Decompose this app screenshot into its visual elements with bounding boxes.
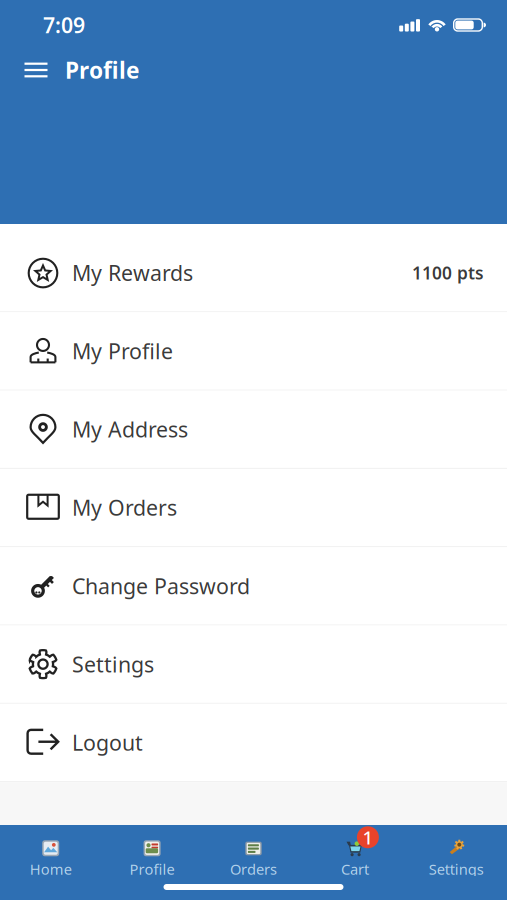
button[interactable]: My Rewards [0,234,507,312]
staticText: version 1.17.2 [191,829,315,853]
staticText: My Address [72,415,188,443]
staticText: My Profile [72,337,173,365]
button[interactable]: Menu [24,58,48,82]
button[interactable]: Home [0,842,101,876]
staticText: Home [30,859,72,879]
staticText: Orders [230,859,277,879]
staticText: Change Password [72,572,250,600]
staticText: Cart [341,859,369,879]
staticText: My Orders [72,493,177,522]
button[interactable]: Settings [406,842,507,876]
button[interactable]: Profile [101,842,203,876]
staticText: Settings [72,650,154,678]
button[interactable]: My Address [0,391,507,469]
staticText: 1 [362,825,373,850]
staticText: My Rewards [72,258,193,287]
button[interactable]: 1 [304,842,406,876]
staticText: 7:09 [43,11,85,39]
button[interactable]: Orders [203,842,304,876]
button[interactable]: Change Password [0,547,507,625]
staticText: Profile [130,859,175,879]
staticText: Settings [429,859,484,879]
button[interactable]: Settings [0,625,507,704]
button[interactable]: My Orders [0,469,507,547]
staticText: 1100 pts [412,261,484,284]
staticText: Profile [65,55,140,85]
button[interactable]: My Profile [0,312,507,391]
staticText: Logout [72,728,143,757]
button[interactable]: Logout [0,704,507,782]
